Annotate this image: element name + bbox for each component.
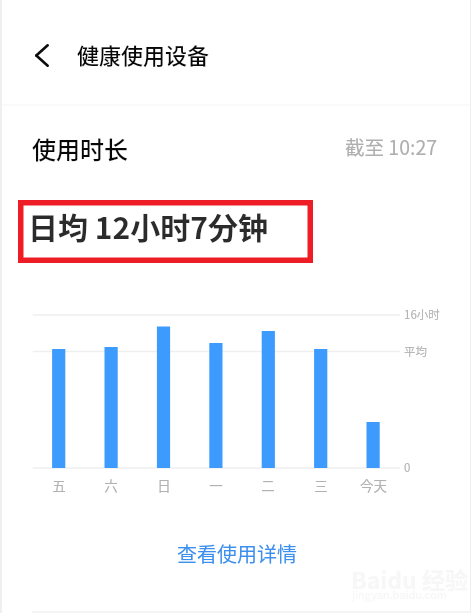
staticText: 五 xyxy=(52,475,66,495)
staticText: 使用时长 xyxy=(32,131,128,166)
staticText: 二 xyxy=(261,475,275,495)
staticText: 六 xyxy=(104,475,118,495)
button[interactable]: 查看使用详情 xyxy=(167,533,307,574)
staticText: 0 xyxy=(404,459,411,476)
staticText: jingyan.baidu.com xyxy=(352,586,448,602)
button[interactable]: Back xyxy=(20,32,64,78)
staticText: 日均 12小时7分钟 xyxy=(28,204,268,247)
staticText: 一 xyxy=(209,475,223,495)
staticText: 查看使用详情 xyxy=(177,539,297,568)
staticText: 三 xyxy=(314,475,328,495)
staticText: 16小时 xyxy=(404,306,440,323)
staticText: Baidu 经验 xyxy=(351,562,468,595)
staticText: 今天 xyxy=(360,475,387,495)
staticText: 日 xyxy=(157,475,171,495)
staticText: 平均 xyxy=(404,343,427,360)
staticText: 截至 10:27 xyxy=(345,132,438,160)
staticText: 健康使用设备 xyxy=(77,38,210,70)
